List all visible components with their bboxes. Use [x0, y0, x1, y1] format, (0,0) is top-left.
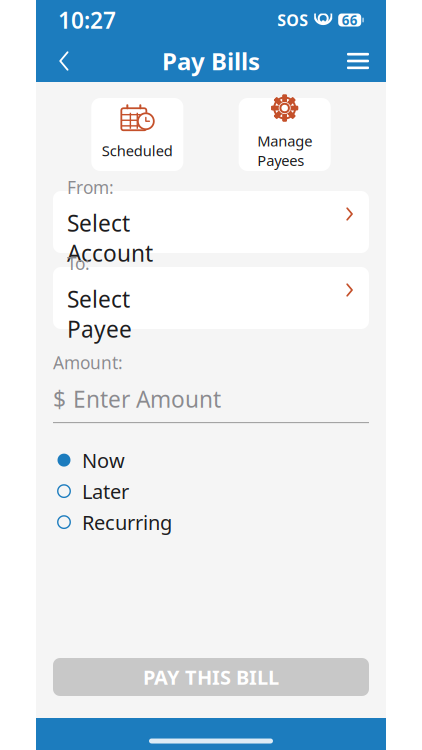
staticText: Manage Payees — [257, 131, 312, 170]
staticText: SOS — [277, 9, 308, 31]
staticText: Enter Amount — [73, 384, 221, 414]
staticText: 66 — [342, 11, 358, 29]
button[interactable]: From: — [53, 191, 369, 253]
staticText: Scheduled — [102, 141, 173, 160]
staticText: Amount: — [53, 351, 123, 374]
staticText: $ — [53, 384, 66, 414]
button[interactable]: Manage Payees — [239, 98, 331, 171]
staticText: PAY THIS BILL — [143, 664, 279, 690]
button[interactable]: Now — [53, 453, 369, 467]
button[interactable]: Scheduled — [91, 98, 183, 171]
button[interactable]: Menu — [336, 40, 380, 82]
staticText: To: — [67, 252, 90, 275]
staticText: 10:27 — [58, 5, 116, 35]
button[interactable]: Recurring — [53, 515, 369, 529]
staticText: Select Account — [67, 208, 153, 268]
button[interactable]: PAY THIS BILL — [53, 658, 369, 696]
button[interactable]: Later — [53, 484, 369, 498]
button[interactable]: To: — [53, 267, 369, 329]
staticText: Now — [82, 447, 125, 473]
staticText: Later — [82, 478, 129, 504]
button[interactable]: Back — [42, 40, 86, 82]
staticText: Recurring — [82, 509, 172, 535]
staticText: Pay Bills — [162, 45, 260, 77]
staticText: From: — [67, 176, 114, 199]
staticText: Select Payee — [67, 284, 132, 344]
